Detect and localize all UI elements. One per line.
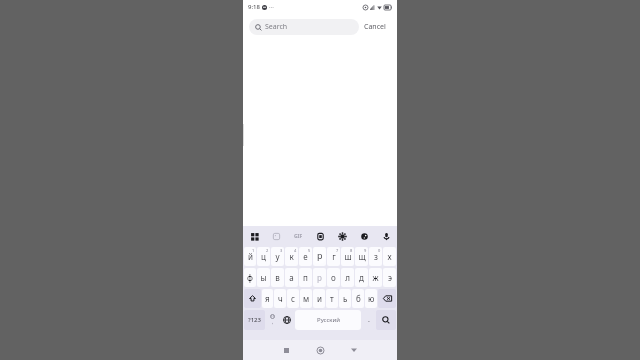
button[interactable]: о	[327, 268, 340, 287]
button[interactable]: и	[313, 289, 325, 308]
button[interactable]: г	[327, 247, 340, 266]
button[interactable]: Backspace	[378, 289, 396, 308]
button[interactable]: п	[299, 268, 312, 287]
button[interactable]: щ	[355, 247, 368, 266]
button[interactable]: з	[369, 247, 382, 266]
staticText: р	[317, 249, 323, 261]
button[interactable]: ь	[339, 289, 351, 308]
staticText: я	[265, 293, 270, 304]
staticText: у	[275, 251, 280, 262]
staticText: ц	[261, 251, 266, 262]
button[interactable]: м	[300, 289, 312, 308]
button[interactable]: р	[313, 247, 326, 266]
staticText: Cancel	[364, 22, 386, 32]
button[interactable]: ы	[257, 268, 270, 287]
button[interactable]: ф	[244, 268, 256, 287]
button[interactable]: ч	[274, 289, 286, 308]
button[interactable]: б	[352, 289, 364, 308]
button[interactable]: Home	[311, 341, 329, 359]
button[interactable]: Stickers	[269, 229, 283, 243]
button[interactable]: р	[313, 268, 326, 287]
staticText: г	[332, 251, 336, 262]
staticText: 8	[350, 248, 353, 253]
staticText: с	[291, 293, 295, 304]
button[interactable]: Shift	[244, 289, 261, 308]
button[interactable]: ш	[341, 247, 354, 266]
button[interactable]: в	[271, 268, 284, 287]
staticText: х	[387, 251, 392, 262]
staticText: а	[289, 272, 294, 283]
staticText: в	[275, 272, 280, 283]
button[interactable]: й	[244, 247, 256, 266]
button[interactable]: э	[383, 268, 396, 287]
staticText: ж	[372, 272, 379, 283]
button[interactable]: Cancel	[359, 19, 391, 35]
staticText: л	[345, 272, 350, 283]
staticText: 1	[252, 248, 255, 253]
staticText: Русский	[317, 316, 340, 324]
staticText: 9	[364, 248, 367, 253]
staticText: ю	[368, 293, 375, 304]
button[interactable]: е	[299, 247, 312, 266]
button[interactable]: Search	[249, 19, 359, 35]
staticText: т	[330, 293, 334, 304]
button[interactable]: я	[262, 289, 273, 308]
button[interactable]: Change language	[280, 310, 294, 330]
staticText: п	[303, 272, 308, 283]
button[interactable]: к	[285, 247, 298, 266]
button[interactable]: Theme	[357, 229, 371, 243]
staticText: б	[356, 293, 361, 304]
staticText: GIF	[294, 233, 303, 240]
button[interactable]: х	[383, 247, 396, 266]
button[interactable]: у	[271, 247, 284, 266]
staticText: ь	[343, 293, 348, 304]
button[interactable]: Recents	[277, 341, 295, 359]
button[interactable]: Clipboard	[313, 229, 327, 243]
staticText: щ	[358, 251, 366, 262]
button[interactable]: Settings	[335, 229, 349, 243]
staticText: и	[317, 293, 322, 304]
staticText: з	[374, 251, 378, 262]
staticText: р	[317, 251, 322, 262]
button[interactable]: .	[362, 310, 375, 330]
staticText: ф	[247, 272, 253, 283]
button[interactable]: ц	[257, 247, 270, 266]
staticText: .	[368, 315, 370, 325]
button[interactable]: с	[287, 289, 299, 308]
staticText: 4	[294, 248, 297, 253]
button[interactable]: Back	[345, 341, 363, 359]
staticText: ?123	[248, 316, 261, 324]
button[interactable]: Emoji and comma	[266, 310, 279, 330]
button[interactable]: Search	[376, 310, 396, 330]
button[interactable]: ю	[365, 289, 377, 308]
staticText: э	[388, 272, 392, 283]
button[interactable]: т	[326, 289, 338, 308]
button[interactable]: ж	[369, 268, 382, 287]
staticText: м	[303, 293, 310, 304]
staticText: ш	[344, 251, 352, 262]
staticText: ···	[269, 3, 274, 11]
button[interactable]: д	[355, 268, 368, 287]
staticText: о	[331, 272, 336, 283]
staticText: д	[359, 272, 364, 283]
button[interactable]: Русский	[295, 310, 361, 330]
button[interactable]: Apps	[247, 229, 261, 243]
staticText: ,	[272, 319, 274, 326]
staticText: Search	[265, 22, 288, 32]
staticText: 3	[280, 248, 283, 253]
staticText: ч	[278, 293, 283, 304]
button[interactable]: GIF	[291, 229, 305, 243]
staticText: к	[289, 251, 294, 262]
button[interactable]: л	[341, 268, 354, 287]
button[interactable]: ?123	[244, 310, 265, 330]
staticText: 0	[378, 248, 381, 253]
staticText: 5	[308, 248, 311, 253]
staticText: 2	[266, 248, 269, 253]
button[interactable]: а	[285, 268, 298, 287]
staticText: е	[303, 251, 308, 262]
staticText: 9:18	[248, 3, 260, 11]
button[interactable]: Voice input	[379, 229, 393, 243]
staticText: ы	[260, 272, 267, 283]
staticText: р	[317, 272, 322, 283]
